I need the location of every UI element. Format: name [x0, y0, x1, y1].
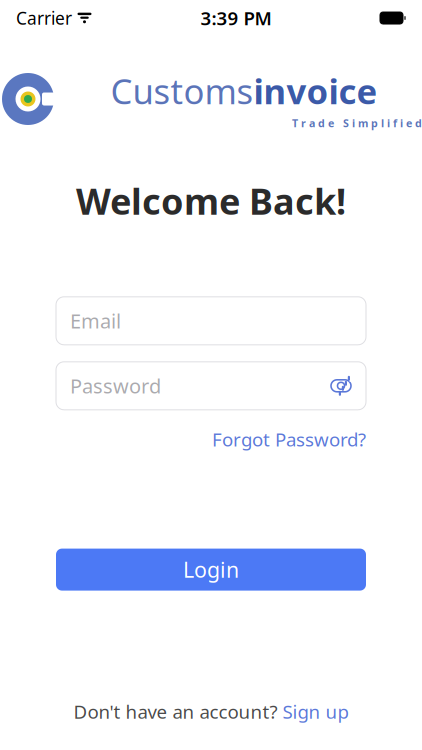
- button[interactable]: Don't have an account?: [73, 695, 348, 728]
- button[interactable]: Password: [56, 362, 366, 410]
- staticText: Sign up: [282, 699, 348, 724]
- staticText: T r a d e S i m p l i f i e d: [292, 116, 422, 130]
- staticText: Welcome Back!: [76, 177, 346, 225]
- button[interactable]: Login: [56, 549, 366, 591]
- staticText: Carrier: [16, 6, 72, 29]
- staticText: Password: [70, 372, 161, 399]
- staticText: Forgot Password?: [212, 427, 366, 452]
- staticText: Customs: [110, 68, 253, 114]
- staticText: Login: [183, 555, 239, 584]
- button[interactable]: Forgot Password?: [212, 423, 366, 456]
- staticText: Email: [70, 307, 121, 334]
- staticText: 3:39 PM: [200, 6, 271, 30]
- button[interactable]: Email: [56, 297, 366, 345]
- staticText: Don't have an account?: [73, 699, 277, 724]
- staticText: invoice: [253, 68, 377, 114]
